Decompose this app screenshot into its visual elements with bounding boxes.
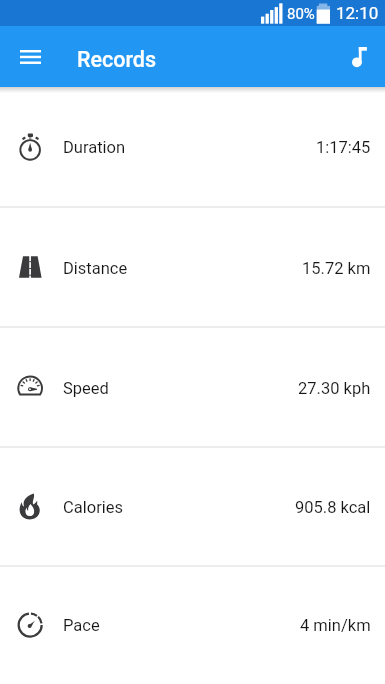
button[interactable]: Calories	[0, 448, 385, 565]
button[interactable]: Open navigation menu	[9, 35, 52, 78]
staticText: Distance	[63, 259, 128, 278]
staticText: 15.72 km	[302, 259, 371, 278]
button[interactable]: Pace	[0, 567, 385, 682]
staticText: Speed	[63, 379, 109, 398]
staticText: Duration	[63, 138, 126, 157]
button[interactable]: Duration	[0, 87, 385, 206]
staticText: Pace	[63, 616, 100, 635]
button[interactable]: Distance	[0, 208, 385, 326]
staticText: 27.30 kph	[298, 379, 371, 398]
staticText: 4 min/km	[300, 616, 371, 635]
button[interactable]: Speed	[0, 328, 385, 446]
staticText: Records	[77, 47, 157, 72]
button[interactable]: Music	[340, 35, 383, 78]
staticText: 1:17:45	[316, 138, 371, 157]
staticText: 12:10	[336, 3, 379, 23]
staticText: 905.8 kcal	[295, 498, 371, 517]
staticText: Calories	[63, 498, 124, 517]
staticText: 80%	[287, 5, 315, 23]
